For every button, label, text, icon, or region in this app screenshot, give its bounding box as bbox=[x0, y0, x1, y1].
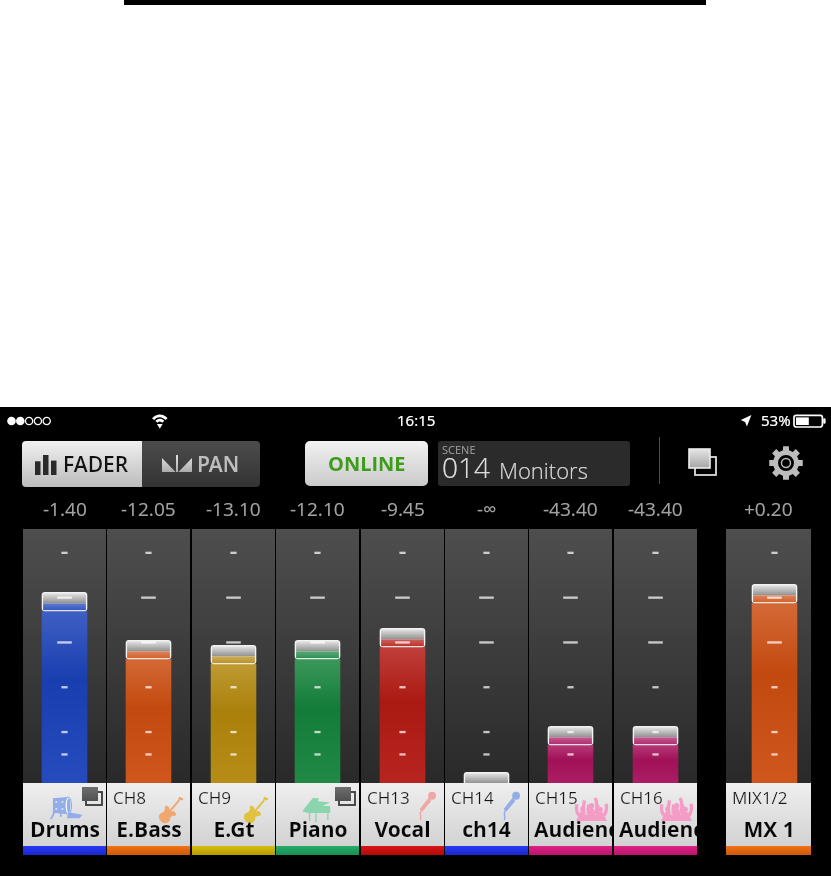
staticText: ch14 bbox=[462, 815, 511, 844]
staticText: 014 bbox=[442, 448, 490, 486]
button[interactable]: SCENE bbox=[438, 441, 630, 486]
staticText: -1.40 bbox=[43, 496, 87, 522]
staticText: MIX1/2 bbox=[732, 786, 788, 809]
staticText: CH9 bbox=[198, 786, 231, 809]
button[interactable]: CH15 bbox=[529, 529, 612, 855]
staticText: -12.05 bbox=[121, 496, 176, 522]
button[interactable]: CH8 bbox=[107, 529, 190, 855]
button[interactable]: Piano bbox=[276, 529, 359, 855]
staticText: -43.40 bbox=[543, 496, 598, 522]
staticText: PAN bbox=[197, 450, 240, 479]
staticText: -∞ bbox=[477, 496, 497, 522]
button[interactable]: MIX1/2 bbox=[726, 529, 811, 855]
button[interactable]: FADER bbox=[22, 441, 142, 487]
staticText: CH8 bbox=[113, 786, 146, 809]
staticText: Vocal bbox=[374, 815, 431, 844]
button[interactable]: CH9 bbox=[192, 529, 275, 855]
staticText: CH16 bbox=[620, 786, 663, 809]
button[interactable]: ONLINE bbox=[305, 441, 428, 486]
staticText: MX 1 bbox=[743, 815, 795, 844]
button[interactable]: CH14 bbox=[445, 529, 528, 855]
staticText: ONLINE bbox=[328, 450, 406, 477]
staticText: Monitors bbox=[499, 455, 588, 485]
staticText: CH14 bbox=[451, 786, 494, 809]
button[interactable]: PAN bbox=[142, 441, 260, 487]
staticText: -9.45 bbox=[381, 496, 425, 522]
staticText: 16:15 bbox=[397, 410, 436, 430]
staticText: -12.10 bbox=[290, 496, 345, 522]
button[interactable]: Drums bbox=[23, 529, 106, 855]
staticText: +0.20 bbox=[744, 496, 793, 522]
staticText: SCENE bbox=[442, 442, 476, 457]
staticText: -13.10 bbox=[206, 496, 261, 522]
staticText: E.Bass bbox=[116, 815, 182, 844]
staticText: 53% bbox=[761, 410, 791, 430]
staticText: CH15 bbox=[535, 786, 578, 809]
staticText: Audience bbox=[619, 815, 702, 844]
button[interactable]: Layers bbox=[676, 440, 730, 485]
staticText: E.Gt bbox=[213, 815, 255, 844]
button[interactable]: Settings bbox=[758, 440, 813, 485]
staticText: FADER bbox=[63, 450, 129, 479]
button[interactable]: CH16 bbox=[614, 529, 697, 855]
button[interactable]: CH13 bbox=[361, 529, 444, 855]
staticText: Drums bbox=[30, 815, 100, 844]
staticText: Piano bbox=[288, 815, 348, 844]
staticText: CH13 bbox=[367, 786, 410, 809]
staticText: Audience bbox=[534, 815, 617, 844]
staticText: -43.40 bbox=[628, 496, 683, 522]
